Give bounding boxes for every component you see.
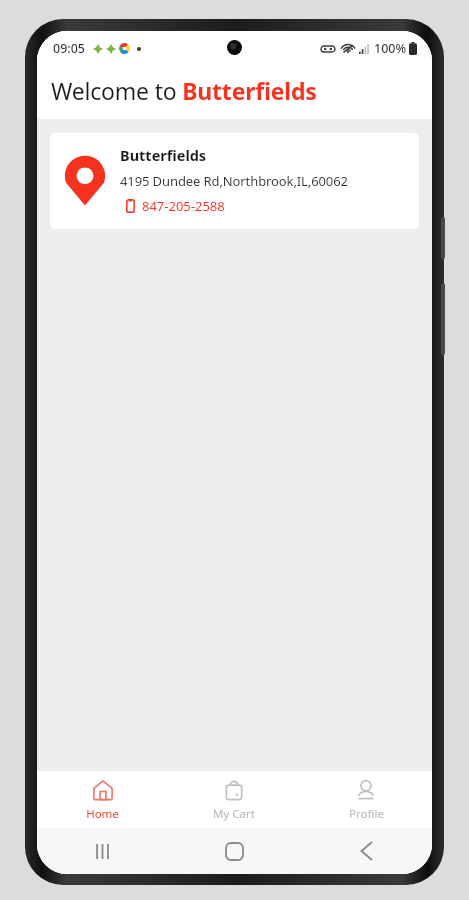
button[interactable]: Location (50, 133, 419, 229)
other: Profile (354, 778, 378, 802)
button[interactable]: Home (37, 771, 168, 828)
other: Home (91, 778, 115, 802)
staticText: Home (86, 806, 119, 822)
staticText: Butterfields (120, 145, 207, 165)
staticText: Profile (349, 806, 384, 822)
staticText: 09:05 (53, 40, 86, 57)
other: My Cart (222, 778, 246, 802)
button[interactable]: My Cart (168, 771, 300, 828)
button[interactable]: Recents (37, 828, 168, 874)
button[interactable]: Home (168, 828, 300, 874)
button[interactable]: Profile (300, 771, 432, 828)
staticText: 100% (374, 40, 407, 57)
staticText: My Cart (213, 806, 255, 822)
staticText: 4195 Dundee Rd,Northbrook,IL,60062 (120, 172, 348, 190)
other: Location (64, 153, 106, 207)
staticText: 847-205-2588 (142, 197, 225, 215)
staticText: Welcome to Butterfields (51, 75, 317, 106)
button[interactable]: 847-205-2588 (120, 197, 225, 215)
button[interactable]: Back (300, 828, 432, 874)
